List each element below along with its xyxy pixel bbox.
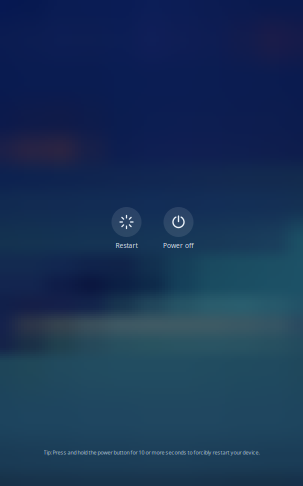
staticText: Power off: [163, 241, 194, 250]
button[interactable]: Restart: [100, 207, 152, 250]
staticText: Restart: [115, 241, 137, 250]
staticText: Tip: Press and hold the power button for…: [43, 449, 259, 456]
button[interactable]: Power off: [152, 207, 204, 250]
